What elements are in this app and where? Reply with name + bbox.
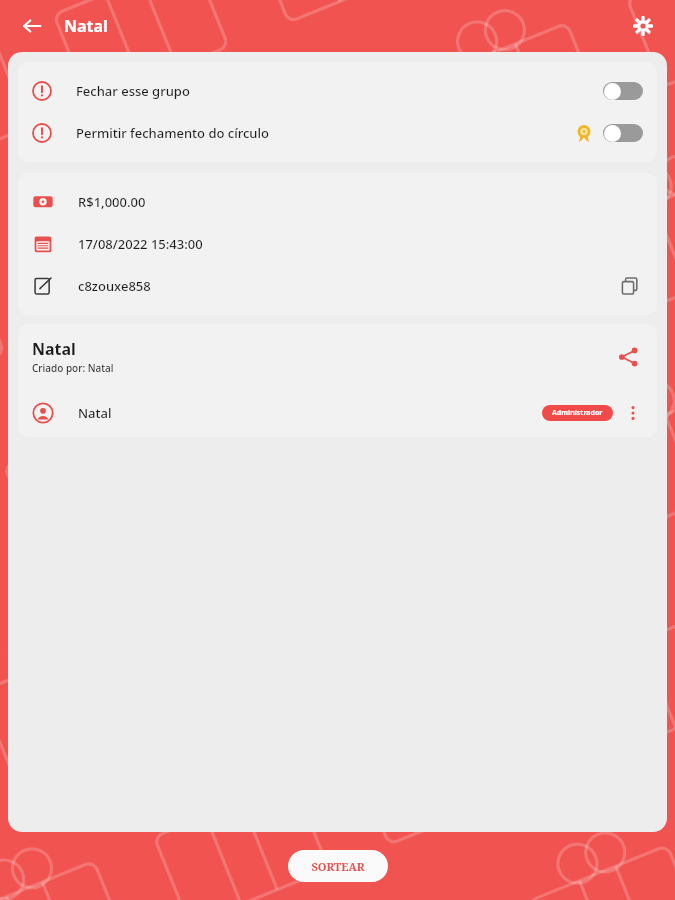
button[interactable]: c8zouxe858 bbox=[18, 265, 657, 307]
button[interactable]: SORTEAR bbox=[288, 850, 388, 882]
button[interactable] bbox=[603, 82, 643, 100]
button[interactable]: Share bbox=[613, 342, 643, 372]
button[interactable]: More options bbox=[621, 401, 645, 425]
button[interactable]: 17/08/2022 15:43:00 bbox=[18, 223, 657, 265]
staticText: Natal bbox=[78, 404, 112, 422]
staticText: Natal bbox=[32, 338, 76, 360]
staticText: Permitir fechamento do círculo bbox=[76, 124, 269, 142]
staticText: R$1,000.00 bbox=[78, 193, 146, 211]
staticText: 17/08/2022 15:43:00 bbox=[78, 235, 203, 253]
staticText: c8zouxe858 bbox=[78, 277, 151, 295]
button[interactable]: Fechar esse grupo bbox=[18, 70, 657, 112]
staticText: Criado por: Natal bbox=[32, 361, 114, 375]
staticText: Administrador bbox=[552, 408, 603, 418]
button[interactable]: Copy code bbox=[617, 273, 643, 299]
button[interactable]: Back bbox=[16, 10, 48, 42]
staticText: Fechar esse grupo bbox=[76, 82, 190, 100]
button[interactable]: Settings bbox=[627, 10, 659, 42]
button[interactable]: Administrador bbox=[542, 405, 613, 421]
button[interactable] bbox=[603, 124, 643, 142]
staticText: Natal bbox=[64, 15, 108, 37]
staticText: SORTEAR bbox=[311, 859, 365, 874]
button[interactable]: Permitir fechamento do círculo bbox=[18, 112, 657, 154]
button[interactable]: Natal bbox=[18, 393, 657, 433]
button[interactable]: R$1,000.00 bbox=[18, 181, 657, 223]
